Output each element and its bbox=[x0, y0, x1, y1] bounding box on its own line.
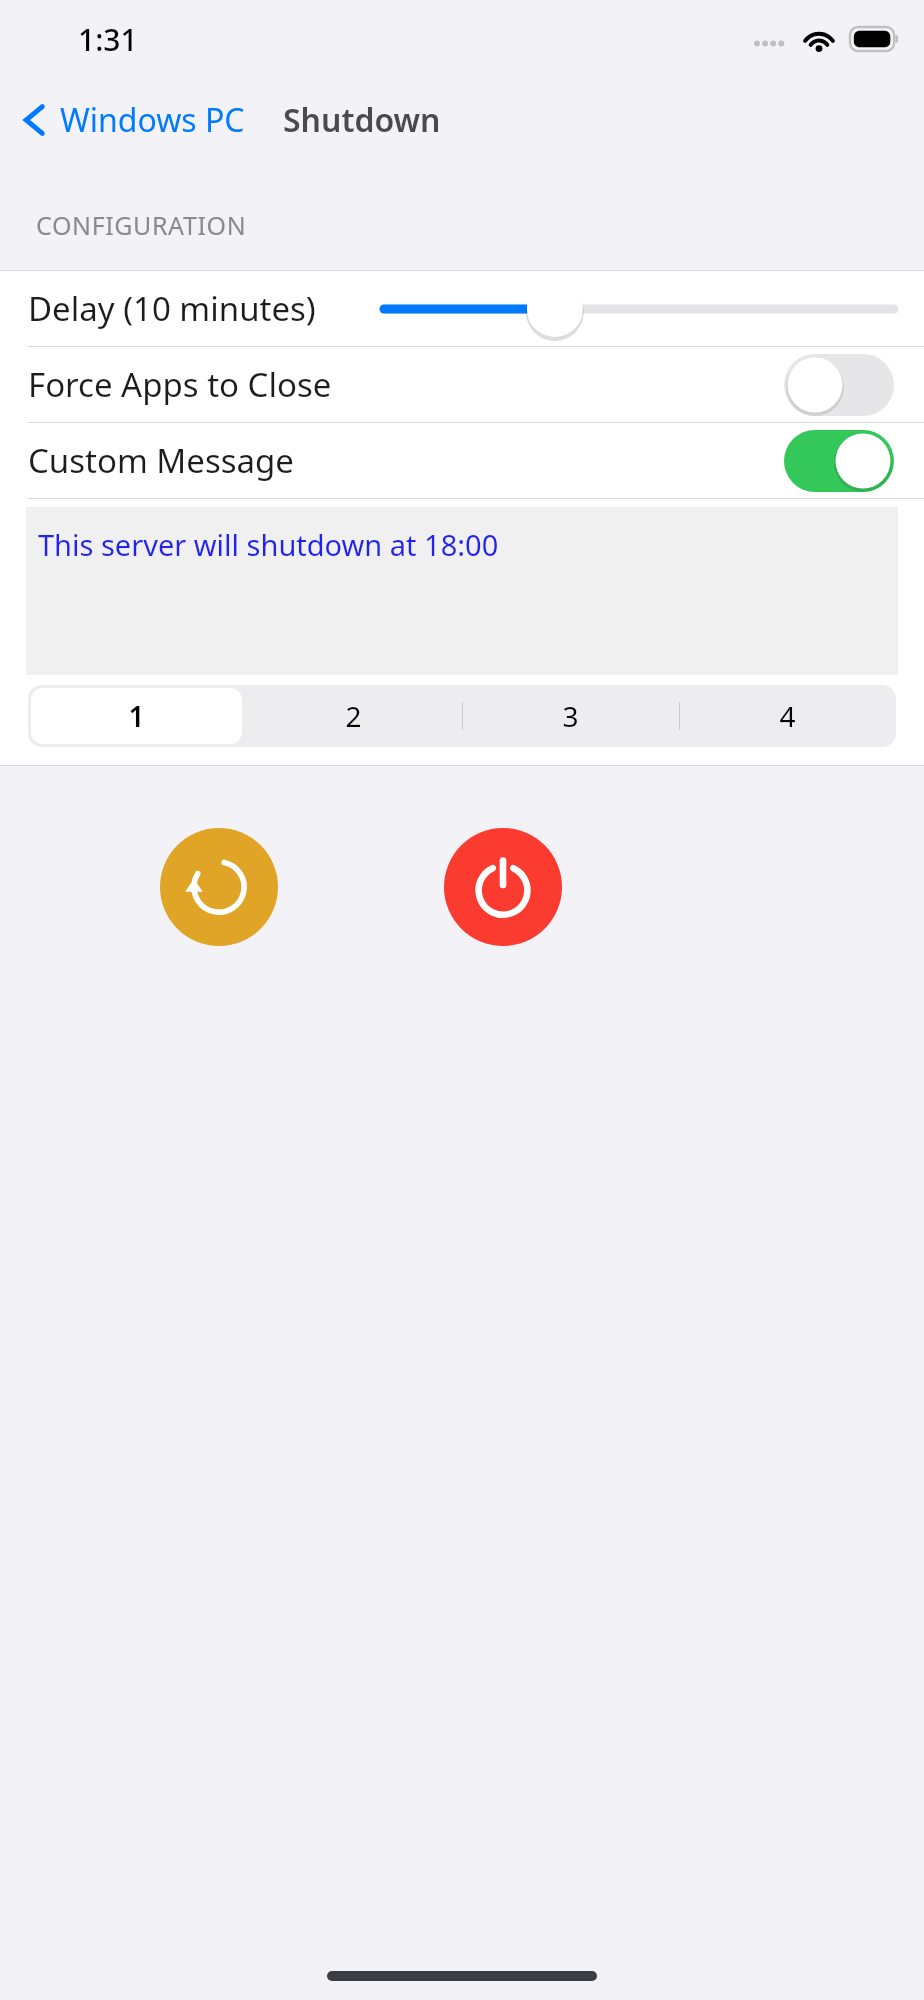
button[interactable]: Windows PC bbox=[0, 90, 261, 150]
button[interactable]: Restart bbox=[160, 828, 278, 946]
button[interactable]: 4 bbox=[679, 685, 896, 747]
button[interactable]: Toggle on bbox=[784, 430, 894, 492]
staticText: Shutdown bbox=[283, 98, 441, 142]
staticText: 1 bbox=[128, 697, 145, 735]
staticText: 3 bbox=[562, 697, 579, 735]
button[interactable]: Shut down bbox=[444, 828, 562, 946]
button[interactable]: Force Apps to Close bbox=[0, 347, 924, 422]
button[interactable]: Toggle off bbox=[784, 354, 894, 416]
staticText: 1:31 bbox=[78, 19, 138, 60]
staticText: Custom Message bbox=[28, 438, 294, 483]
staticText: This server will shutdown at 18:00 bbox=[38, 525, 499, 564]
button[interactable]: 1 bbox=[28, 685, 245, 747]
button[interactable]: 2 bbox=[245, 685, 462, 747]
staticText: 4 bbox=[779, 697, 796, 735]
button[interactable]: Custom Message bbox=[0, 423, 924, 498]
staticText: Windows PC bbox=[60, 98, 245, 142]
staticText: Delay (10 minutes) bbox=[28, 286, 316, 331]
button[interactable]: This server will shutdown at 18:00 bbox=[26, 507, 898, 675]
staticText: Force Apps to Close bbox=[28, 362, 332, 407]
staticText: 2 bbox=[345, 697, 362, 735]
button[interactable]: Delay (10 minutes) bbox=[0, 271, 924, 346]
staticText: CONFIGURATION bbox=[36, 208, 247, 242]
button[interactable]: 3 bbox=[462, 685, 679, 747]
